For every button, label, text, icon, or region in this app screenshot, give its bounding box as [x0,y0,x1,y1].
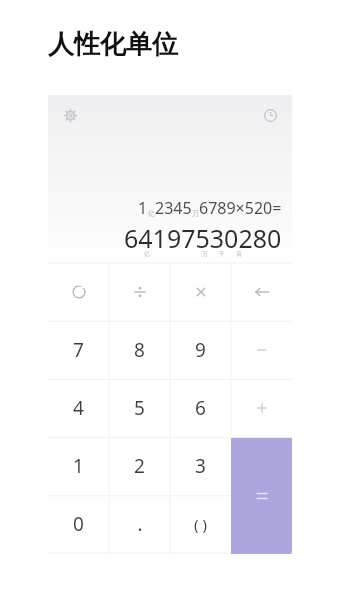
staticText: 亿 [148,209,155,218]
button[interactable]: 0 [48,495,109,553]
button[interactable]: 1 [48,437,109,495]
staticText: 人性化单位 [48,28,178,61]
staticText: 3 [195,453,206,479]
button[interactable]: 9 [170,321,231,379]
button[interactable]: Settings [56,101,84,129]
staticText: 9 [195,337,206,363]
staticText: 5 [134,395,145,421]
staticText: 万 [192,209,199,218]
staticText: 0 [73,511,84,537]
staticText: 万 [202,250,208,258]
staticText: 2345 [155,197,192,219]
staticText: 1 [73,453,84,479]
staticText: 6 [195,395,206,421]
button[interactable]: 3 [170,437,231,495]
button[interactable]: Clear [48,263,109,321]
button[interactable]: 2 [109,437,170,495]
staticText: 亿 [144,250,150,258]
staticText: 6789×520= [199,197,282,219]
staticText: 百 [236,250,242,258]
button[interactable]: 6 [170,379,231,437]
staticText: . [137,511,143,537]
button[interactable]: . [109,495,170,553]
staticText: 64197530280 [124,221,282,255]
staticText: 1 [138,197,148,219]
staticText: 8 [134,337,145,363]
button[interactable]: Plus [231,379,292,437]
button[interactable]: 7 [48,321,109,379]
staticText: 2 [134,453,145,479]
button[interactable]: Multiply [170,263,231,321]
staticText: 千 [219,250,225,258]
button[interactable]: Backspace [231,263,292,321]
button[interactable]: Equals [231,437,292,554]
button[interactable]: Divide [109,263,170,321]
button[interactable]: History [256,101,284,129]
staticText: 7 [73,337,84,363]
button[interactable]: 4 [48,379,109,437]
button[interactable]: 5 [109,379,170,437]
button[interactable]: Minus [231,321,292,379]
button[interactable]: ( ) [170,495,231,553]
staticText: ( ) [194,514,207,534]
button[interactable]: 8 [109,321,170,379]
staticText: 4 [73,395,84,421]
